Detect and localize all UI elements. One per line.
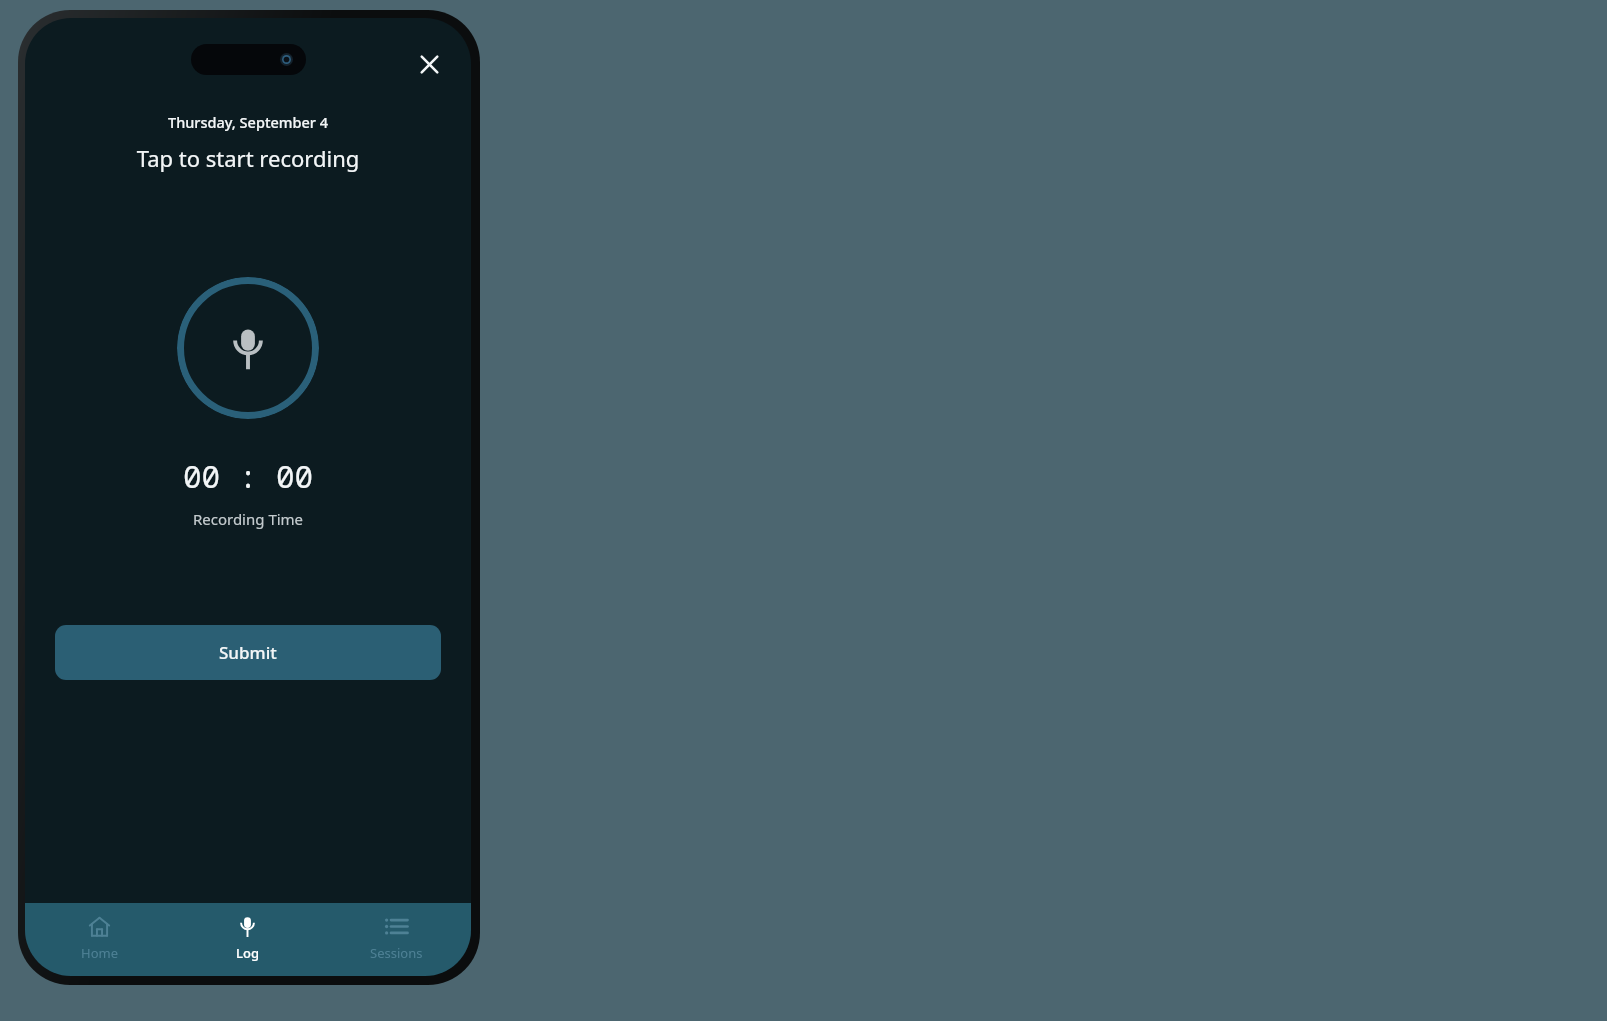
button[interactable]: Home [25, 903, 173, 976]
button[interactable]: Log [173, 903, 322, 976]
staticText: Home [81, 944, 118, 962]
button[interactable]: Sessions [322, 903, 471, 976]
staticText: Recording Time [25, 509, 471, 529]
staticText: Tap to start recording [25, 143, 471, 173]
button[interactable]: Submit [55, 625, 441, 680]
button[interactable]: Start recording [177, 277, 319, 419]
staticText: Log [236, 944, 259, 962]
staticText: 00 : 00 [25, 455, 471, 497]
button[interactable]: Close [409, 44, 449, 84]
staticText: Submit [219, 641, 277, 664]
staticText: Thursday, September 4 [25, 112, 471, 132]
staticText: Sessions [370, 944, 423, 962]
